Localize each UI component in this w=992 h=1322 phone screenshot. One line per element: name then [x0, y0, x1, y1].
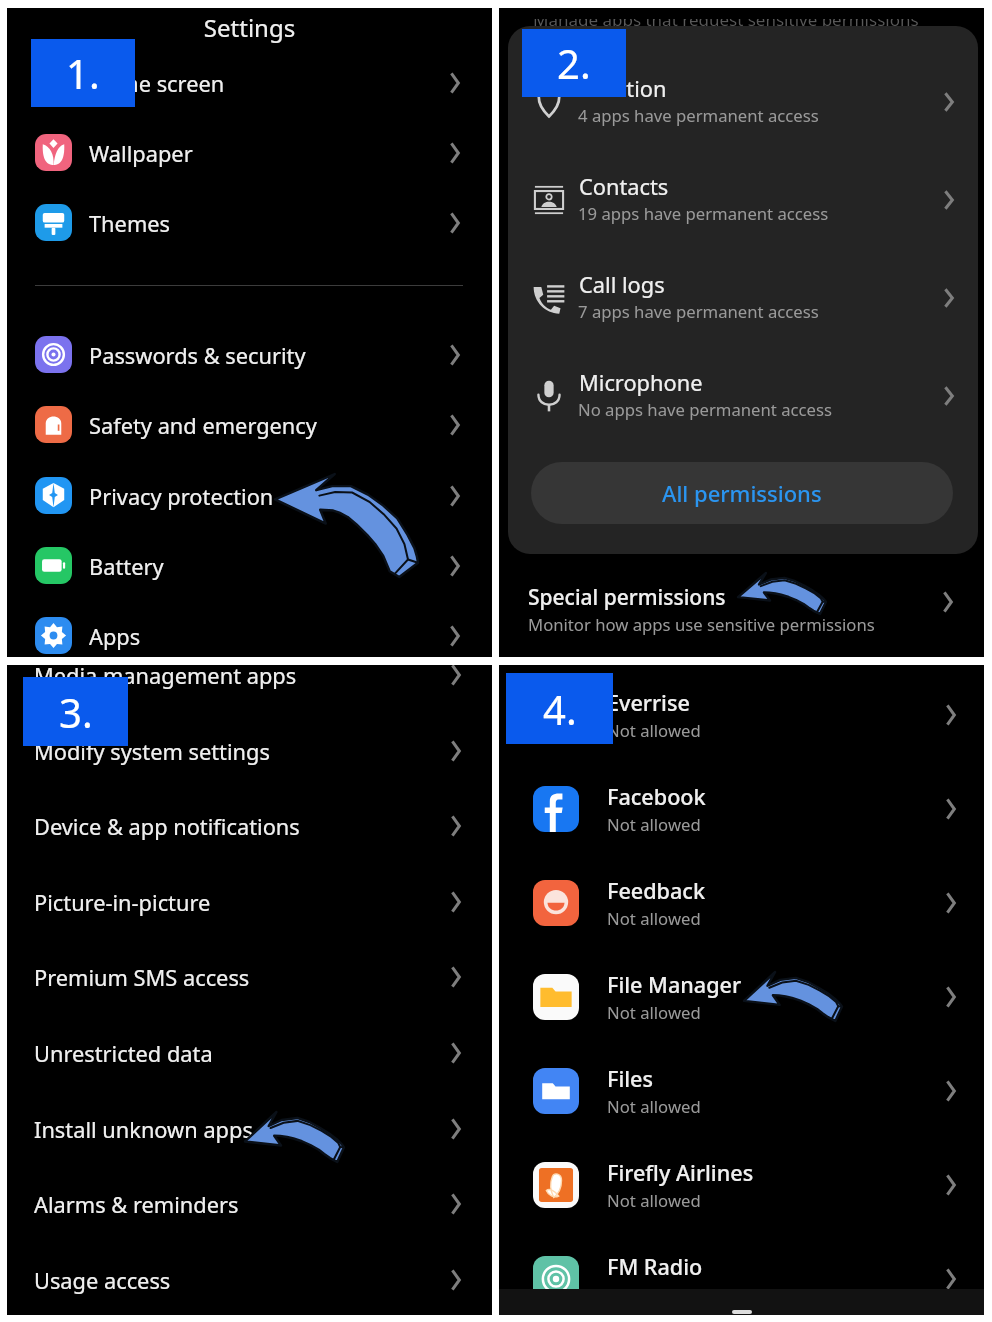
staticText: Picture-in-picture: [34, 888, 211, 918]
staticText: Contacts: [579, 172, 669, 202]
staticText: Not allowed: [607, 907, 701, 930]
button[interactable]: All permissions: [531, 462, 953, 524]
other: Open: [945, 1174, 957, 1196]
staticText: Not allowed: [607, 1189, 701, 1212]
staticText: Not allowed: [607, 719, 701, 742]
staticText: Call logs: [579, 270, 665, 300]
other: Open: [945, 986, 957, 1008]
staticText: Not allowed: [607, 1001, 701, 1024]
staticText: Files: [607, 1064, 653, 1093]
button[interactable]: Call logs: [508, 245, 978, 343]
button[interactable]: Feedback: [499, 851, 984, 945]
staticText: Modify system settings: [34, 737, 270, 767]
other: Open: [449, 414, 461, 436]
staticText: Premium SMS access: [34, 963, 250, 993]
other: Open: [449, 212, 461, 234]
button[interactable]: Unrestricted data: [7, 1018, 492, 1093]
other: Open: [450, 1042, 462, 1064]
staticText: Apps: [89, 622, 141, 652]
other: Open: [942, 591, 954, 613]
button[interactable]: Firefly Airlines: [499, 1133, 984, 1227]
staticText: Not allowed: [607, 813, 701, 836]
other: Open: [449, 72, 461, 94]
button[interactable]: Premium SMS access: [7, 942, 492, 1017]
staticText: Safety and emergency: [89, 411, 317, 441]
button[interactable]: Everrise: [499, 665, 984, 757]
button[interactable]: Safety and emergency: [7, 390, 492, 460]
staticText: Themes: [89, 209, 170, 239]
button[interactable]: Battery: [7, 531, 492, 601]
other: Open: [945, 1268, 957, 1290]
button[interactable]: Themes: [7, 188, 492, 258]
staticText: Special permissions: [528, 583, 726, 612]
other: Open: [450, 891, 462, 913]
staticText: Microphone: [579, 368, 703, 398]
other: Open: [450, 1118, 462, 1140]
button[interactable]: Files: [499, 1039, 984, 1133]
staticText: File Manager: [607, 970, 742, 999]
staticText: Install unknown apps: [34, 1115, 253, 1145]
staticText: Facebook: [607, 782, 706, 811]
button[interactable]: Passwords & security: [7, 320, 492, 390]
staticText: 7 apps have permanent access: [578, 300, 819, 323]
staticText: 4 apps have permanent access: [578, 104, 819, 127]
button[interactable]: Privacy protection: [7, 461, 492, 531]
button[interactable]: Wallpaper: [7, 118, 492, 188]
button[interactable]: Home screen: [7, 48, 492, 118]
button[interactable]: Modify system settings: [7, 716, 492, 791]
other: Open: [450, 966, 462, 988]
staticText: Device & app notifications: [34, 812, 300, 842]
staticText: FM Radio: [607, 1252, 703, 1281]
other: Open: [450, 815, 462, 837]
staticText: Usage access: [34, 1266, 171, 1296]
staticText: 3.: [59, 685, 93, 739]
other: Open: [449, 555, 461, 577]
staticText: Not allowed: [607, 1095, 701, 1118]
other: Open: [945, 798, 957, 820]
staticText: No apps have permanent access: [578, 398, 832, 421]
button[interactable]: Device & app notifications: [7, 791, 492, 866]
staticText: Alarms & reminders: [34, 1190, 239, 1220]
staticText: Firefly Airlines: [607, 1158, 754, 1187]
button[interactable]: Special permissions: [499, 562, 984, 648]
other: Open: [450, 1269, 462, 1291]
other: Open: [943, 288, 955, 308]
staticText: Settings: [7, 11, 492, 44]
staticText: Unrestricted data: [34, 1039, 213, 1069]
staticText: 4.: [543, 682, 577, 736]
staticText: Location: [579, 74, 667, 104]
other: Open: [449, 344, 461, 366]
button[interactable]: Microphone: [508, 343, 978, 441]
button[interactable]: Apps: [7, 601, 492, 657]
staticText: Media management apps: [34, 665, 297, 691]
staticText: Wallpaper: [89, 139, 193, 169]
button[interactable]: File Manager: [499, 945, 984, 1039]
other: Open: [945, 892, 957, 914]
staticText: Passwords & security: [89, 341, 306, 371]
button[interactable]: Facebook: [499, 757, 984, 851]
other: Open: [450, 740, 462, 762]
staticText: Manage apps that request sensitive permi…: [533, 8, 919, 31]
other: Open: [450, 1193, 462, 1215]
button[interactable]: Alarms & reminders: [7, 1169, 492, 1244]
button[interactable]: Contacts: [508, 147, 978, 245]
button[interactable]: Usage access: [7, 1245, 492, 1315]
staticText: Privacy protection: [89, 482, 274, 512]
staticText: Monitor how apps use sensitive permissio…: [528, 613, 875, 636]
other: Open: [449, 485, 461, 507]
button[interactable]: Picture-in-picture: [7, 867, 492, 942]
other: Open: [449, 625, 461, 647]
button[interactable]: Install unknown apps: [7, 1094, 492, 1169]
other: Open: [449, 142, 461, 164]
other: Open: [943, 190, 955, 210]
staticText: 19 apps have permanent access: [578, 202, 829, 225]
staticText: 2.: [557, 36, 591, 90]
other: Open: [945, 1080, 957, 1102]
button[interactable]: Media management apps: [7, 665, 492, 715]
button[interactable]: FM Radio: [499, 1227, 984, 1315]
other: Open: [450, 665, 462, 686]
staticText: Home screen: [89, 69, 225, 99]
button[interactable]: Location: [508, 49, 978, 147]
other: Open: [943, 92, 955, 112]
other: Open: [945, 704, 957, 726]
